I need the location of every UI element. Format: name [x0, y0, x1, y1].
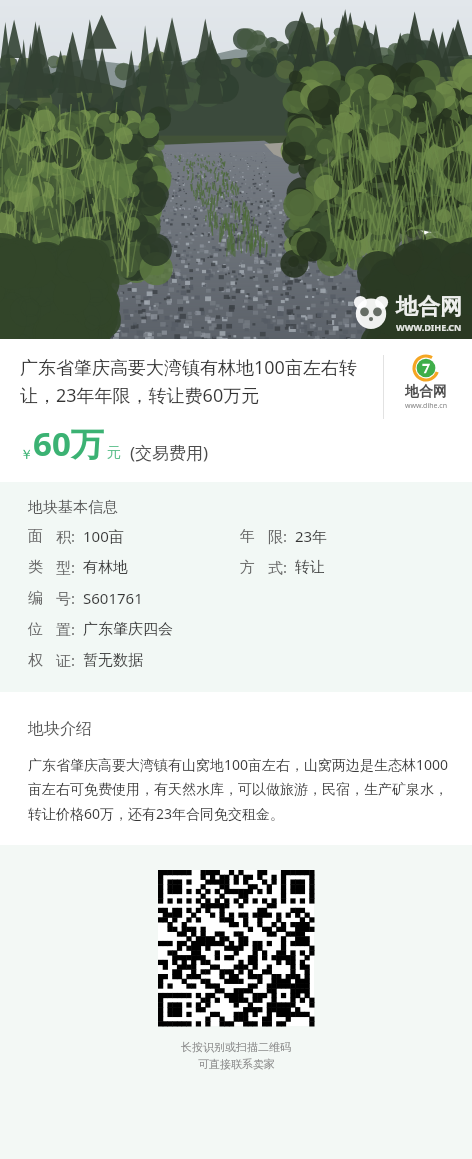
- staticText: 可直接联系卖家: [198, 1057, 275, 1071]
- staticText: ￥: [20, 446, 33, 462]
- staticText: 类: [28, 558, 43, 577]
- staticText: 地块介绍: [28, 719, 92, 739]
- staticText: 式:: [268, 557, 288, 577]
- staticText: 年: [240, 527, 255, 546]
- staticText: 暂无数据: [83, 651, 143, 670]
- staticText: 23年: [295, 526, 328, 546]
- staticText: 60万: [33, 421, 104, 466]
- staticText: 转让: [295, 558, 325, 577]
- staticText: 地块基本信息: [28, 498, 118, 517]
- staticText: 地合网: [396, 293, 462, 321]
- staticText: 限:: [268, 526, 288, 546]
- staticText: 广东省肇庆高要大湾镇有林地100亩左右转让，23年年限，转让费60万元: [20, 355, 371, 408]
- button[interactable]: 广东省肇庆高要大湾镇有林地100亩左右转让，23年年限，转让费60万元: [0, 339, 472, 482]
- staticText: 方: [240, 558, 255, 577]
- staticText: 置:: [56, 619, 76, 639]
- staticText: www.dihe.cn: [405, 401, 448, 411]
- staticText: 广东省肇庆高要大湾镇有山窝地100亩左右，山窝两边是生态林1000亩左右可免费使…: [28, 755, 450, 823]
- staticText: 广东肇庆四会: [83, 620, 173, 639]
- staticText: WWW.DIHE.CN: [396, 321, 462, 333]
- staticText: 地合网: [405, 383, 447, 401]
- staticText: (交易费用): [130, 441, 209, 464]
- button[interactable]: 地合网 logo: [394, 355, 458, 411]
- staticText: 面: [28, 527, 43, 546]
- staticText: 100亩: [83, 526, 124, 546]
- staticText: 积:: [56, 526, 76, 546]
- staticText: 元: [107, 444, 121, 462]
- staticText: S601761: [83, 588, 143, 608]
- button[interactable]: QR code - 长按识别联系卖家: [158, 870, 314, 1026]
- staticText: 权: [28, 651, 43, 670]
- staticText: 有林地: [83, 558, 128, 577]
- staticText: 型:: [56, 557, 76, 577]
- staticText: 号:: [56, 588, 76, 608]
- staticText: 编: [28, 589, 43, 608]
- staticText: 证:: [56, 650, 76, 670]
- staticText: 长按识别或扫描二维码: [181, 1040, 291, 1054]
- other: 地合网 watermark: [352, 293, 462, 333]
- staticText: 位: [28, 620, 43, 639]
